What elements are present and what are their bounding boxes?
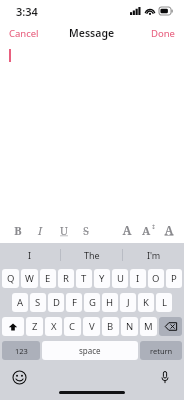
button[interactable]: F	[66, 293, 82, 312]
staticText: R	[63, 272, 69, 285]
staticText: I'm	[147, 249, 161, 261]
button[interactable]: C	[64, 317, 81, 336]
staticText: Q	[7, 272, 15, 285]
button[interactable]: Italic	[29, 217, 52, 243]
staticText: F	[72, 296, 77, 309]
button[interactable]: I	[130, 269, 146, 288]
staticText: T	[81, 272, 87, 285]
button[interactable]: M	[140, 317, 157, 336]
staticText: A	[122, 222, 132, 238]
button[interactable]: I	[0, 243, 60, 267]
staticText: K	[143, 296, 149, 309]
button[interactable]: L	[156, 293, 172, 312]
button[interactable]: Z	[26, 317, 43, 336]
button[interactable]: J	[120, 293, 136, 312]
staticText: U	[60, 223, 68, 238]
button[interactable]: D	[48, 293, 64, 312]
button[interactable]: Cancel	[0, 24, 47, 43]
staticText: I	[38, 223, 43, 238]
staticText: N	[126, 320, 134, 333]
staticText: 123	[15, 346, 28, 356]
button[interactable]: B	[102, 317, 119, 336]
staticText: G	[89, 296, 96, 309]
staticText: M	[144, 320, 153, 333]
button[interactable]: E	[40, 269, 56, 288]
button[interactable]: Y	[94, 269, 110, 288]
button[interactable]: X	[45, 317, 62, 336]
staticText: V	[89, 320, 95, 333]
staticText: Z	[32, 320, 38, 333]
button[interactable]: V	[83, 317, 100, 336]
button[interactable]: Emoji	[9, 367, 29, 387]
button[interactable]: N	[121, 317, 138, 336]
staticText: E	[45, 272, 51, 285]
button[interactable]: 123	[2, 341, 40, 360]
button[interactable]: S	[30, 293, 46, 312]
button[interactable]: Backspace	[159, 317, 182, 336]
button[interactable]: T	[76, 269, 92, 288]
button[interactable]: U	[52, 217, 75, 243]
staticText: L	[162, 296, 167, 309]
button[interactable]: R	[58, 269, 74, 288]
button[interactable]: K	[138, 293, 154, 312]
staticText: O	[152, 272, 160, 285]
staticText: Message	[69, 26, 115, 40]
button[interactable]: space	[42, 341, 138, 360]
staticText: I	[28, 249, 32, 261]
button[interactable]: Dictation	[155, 367, 175, 387]
staticText: X	[51, 320, 57, 333]
staticText: A	[164, 222, 174, 238]
button[interactable]: A	[116, 217, 138, 243]
staticText: return	[150, 346, 173, 356]
staticText: The	[84, 249, 100, 261]
staticText: Y	[99, 272, 105, 285]
staticText: B	[14, 223, 22, 238]
staticText: C	[69, 320, 76, 333]
button[interactable]: G	[84, 293, 100, 312]
staticText: ↕	[151, 223, 157, 230]
staticText: S	[35, 296, 41, 309]
button[interactable]: H	[102, 293, 118, 312]
button[interactable]: A	[160, 217, 178, 243]
button[interactable]: The	[61, 243, 122, 267]
staticText: Done	[151, 27, 175, 40]
button[interactable]: A	[12, 293, 28, 312]
staticText: W	[25, 272, 34, 285]
button[interactable]: P	[166, 269, 182, 288]
button[interactable]: I'm	[123, 243, 184, 267]
button[interactable]: W	[21, 269, 38, 288]
button[interactable]: B	[6, 217, 29, 243]
button[interactable]: Done	[143, 24, 184, 43]
staticText: B	[107, 320, 114, 333]
button[interactable]: Q	[2, 269, 19, 288]
staticText: space	[79, 345, 101, 356]
staticText: I	[136, 272, 140, 285]
staticText: D	[53, 296, 60, 309]
button[interactable]: return	[140, 341, 182, 360]
staticText: P	[171, 272, 177, 285]
staticText: A	[17, 296, 24, 309]
button[interactable]: Shift	[2, 317, 24, 336]
staticText: 3:34	[16, 4, 38, 19]
staticText: H	[106, 296, 114, 309]
staticText: A	[142, 223, 151, 238]
staticText: S	[83, 223, 89, 238]
button[interactable]: U	[112, 269, 128, 288]
button[interactable]: Strikethrough	[75, 217, 97, 243]
staticText: Cancel	[9, 27, 39, 40]
staticText: U	[117, 272, 124, 285]
staticText: J	[127, 296, 130, 309]
button[interactable]: Text size	[138, 217, 160, 243]
button[interactable]: O	[148, 269, 164, 288]
